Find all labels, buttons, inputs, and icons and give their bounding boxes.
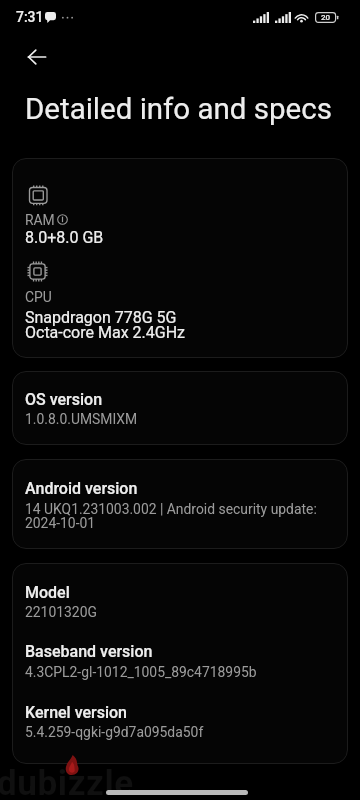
staticText: Octa-core Max 2.4GHz	[25, 323, 185, 342]
staticText: Detailed info and specs	[25, 92, 332, 127]
staticText: 22101320G	[25, 604, 97, 620]
staticText: 1.0.8.0.UMSMIXM	[25, 411, 138, 427]
staticText: Snapdragon 778G 5G	[25, 308, 177, 327]
button[interactable]: Back	[13, 33, 60, 80]
staticText: CPU	[25, 289, 52, 305]
staticText: 4.3CPL2-gl-1012_1005_89c4718995b	[25, 664, 257, 680]
button[interactable]	[12, 371, 348, 445]
staticText: 7:31	[16, 9, 44, 25]
staticText: Baseband version	[25, 642, 153, 661]
staticText: Kernel version	[25, 703, 128, 722]
staticText: 8.0+8.0 GB	[25, 228, 104, 247]
button[interactable]	[12, 459, 348, 549]
staticText: Model	[25, 583, 70, 602]
staticText: 20	[321, 13, 331, 22]
staticText: 2024-10-01	[25, 515, 96, 531]
button[interactable]	[12, 563, 348, 764]
staticText: 5.4.259-qgki-g9d7a095da50f	[25, 724, 204, 740]
button[interactable]	[12, 158, 348, 358]
staticText: Android version	[25, 479, 138, 498]
staticText: 14 UKQ1.231003.002 | Android security up…	[25, 501, 317, 517]
staticText: dubizzle	[0, 763, 134, 800]
staticText: RAM	[25, 212, 55, 228]
staticText: OS version	[25, 390, 103, 409]
